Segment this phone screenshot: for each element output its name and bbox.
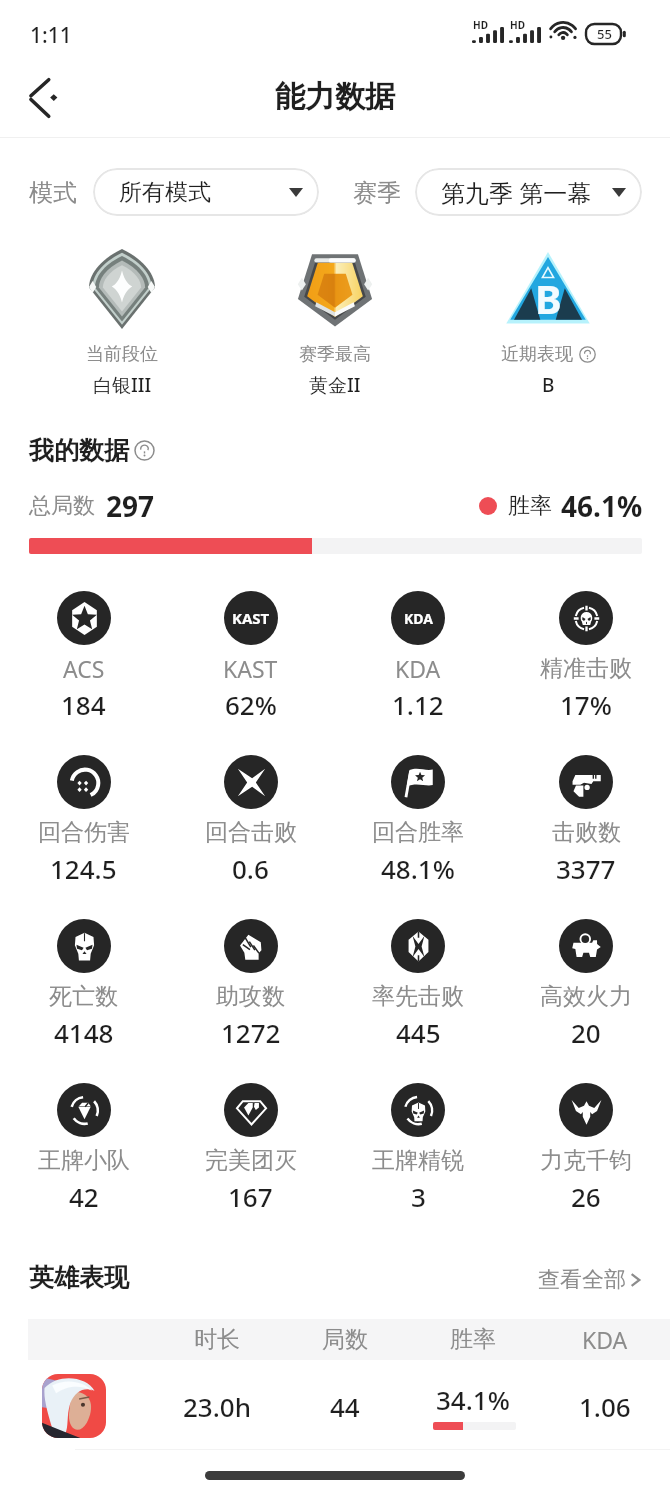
staticText: 回合击败 — [205, 818, 297, 847]
staticText: 4148 — [54, 1015, 114, 1049]
staticText: 当前段位 — [86, 343, 158, 366]
staticText: 率先击败 — [372, 982, 464, 1011]
staticText: KAST — [232, 608, 270, 628]
button[interactable]: 力克千钧 — [502, 1083, 670, 1247]
staticText: 胜率 — [450, 1325, 496, 1354]
staticText: 所有模式 — [119, 178, 211, 207]
staticText: 3 — [411, 1179, 426, 1213]
button[interactable]: 第九季 第一幕 — [415, 168, 642, 216]
button[interactable]: 查看全部 — [538, 1264, 641, 1292]
button[interactable]: KDA — [334, 591, 502, 755]
staticText: 王牌小队 — [38, 1146, 130, 1175]
staticText: 48.1% — [381, 851, 455, 885]
button[interactable]: KAST — [167, 591, 334, 755]
button[interactable]: 王牌精锐 — [334, 1083, 502, 1247]
staticText: 23.0h — [183, 1389, 251, 1424]
staticText: 1272 — [221, 1015, 281, 1049]
staticText: 王牌精锐 — [372, 1146, 464, 1175]
staticText: 55 — [597, 25, 612, 43]
staticText: 胜率 — [508, 492, 552, 520]
staticText: 力克千钧 — [540, 1146, 632, 1175]
staticText: 0.6 — [232, 851, 269, 885]
staticText: 回合胜率 — [372, 818, 464, 847]
staticText: 时长 — [194, 1325, 240, 1354]
staticText: 白银III — [93, 372, 152, 398]
staticText: 62% — [225, 687, 277, 721]
button[interactable]: 高效火力 — [502, 919, 670, 1083]
staticText: 查看全部 — [538, 1266, 626, 1294]
staticText: 297 — [106, 487, 155, 525]
staticText: 黄金II — [309, 372, 361, 398]
staticText: 赛季 — [353, 178, 401, 208]
staticText: HD — [473, 18, 488, 32]
staticText: 44 — [330, 1389, 360, 1424]
staticText: 46.1% — [561, 487, 643, 525]
button[interactable]: Back — [14, 70, 70, 126]
staticText: 我的数据 — [29, 435, 129, 466]
staticText: 184 — [61, 687, 106, 721]
button[interactable]: 当前段位 — [32, 245, 212, 400]
staticText: KDA — [404, 609, 433, 628]
staticText: 3377 — [556, 851, 616, 885]
button[interactable]: 赛季最高 — [245, 245, 425, 400]
staticText: B — [542, 372, 555, 398]
staticText: 20 — [571, 1015, 601, 1049]
staticText: 42 — [69, 1179, 99, 1213]
staticText: 击败数 — [552, 818, 621, 847]
button[interactable]: B — [458, 245, 638, 400]
button[interactable]: 精准击败 — [502, 591, 670, 755]
button[interactable]: 回合胜率 — [334, 755, 502, 919]
staticText: 26 — [571, 1179, 601, 1213]
staticText: 英雄表现 — [29, 1262, 129, 1293]
staticText: 能力数据 — [275, 78, 395, 116]
staticText: B — [535, 271, 562, 325]
button[interactable]: ACS — [0, 591, 167, 755]
button[interactable]: 回合伤害 — [0, 755, 167, 919]
staticText: KAST — [223, 653, 278, 684]
staticText: 回合伤害 — [38, 818, 130, 847]
staticText: ACS — [63, 653, 105, 684]
button[interactable]: 击败数 — [502, 755, 670, 919]
staticText: 124.5 — [50, 851, 117, 885]
button[interactable] — [42, 1374, 106, 1438]
staticText: KDA — [395, 653, 441, 684]
staticText: 精准击败 — [540, 654, 632, 683]
staticText: KDA — [582, 1324, 628, 1355]
staticText: 167 — [228, 1179, 273, 1213]
staticText: 总局数 — [29, 492, 95, 520]
staticText: 445 — [396, 1015, 441, 1049]
button[interactable]: 回合击败 — [167, 755, 334, 919]
staticText: 1.06 — [579, 1389, 631, 1424]
button[interactable]: 完美团灭 — [167, 1083, 334, 1247]
staticText: 34.1% — [436, 1382, 510, 1417]
button[interactable]: 率先击败 — [334, 919, 502, 1083]
staticText: 1:11 — [30, 21, 72, 50]
staticText: 近期表现 — [501, 343, 573, 366]
button[interactable]: 死亡数 — [0, 919, 167, 1083]
staticText: 1.12 — [392, 687, 444, 721]
button[interactable]: 助攻数 — [167, 919, 334, 1083]
staticText: HD — [510, 18, 525, 32]
staticText: 模式 — [29, 178, 77, 208]
button[interactable]: 所有模式 — [93, 168, 319, 216]
staticText: 死亡数 — [49, 982, 118, 1011]
staticText: 助攻数 — [216, 982, 285, 1011]
staticText: 第九季 第一幕 — [441, 176, 592, 209]
staticText: 高效火力 — [540, 982, 632, 1011]
staticText: 赛季最高 — [299, 343, 371, 366]
staticText: 局数 — [322, 1325, 368, 1354]
button[interactable]: 王牌小队 — [0, 1083, 167, 1247]
staticText: 完美团灭 — [205, 1146, 297, 1175]
staticText: 17% — [560, 687, 612, 721]
